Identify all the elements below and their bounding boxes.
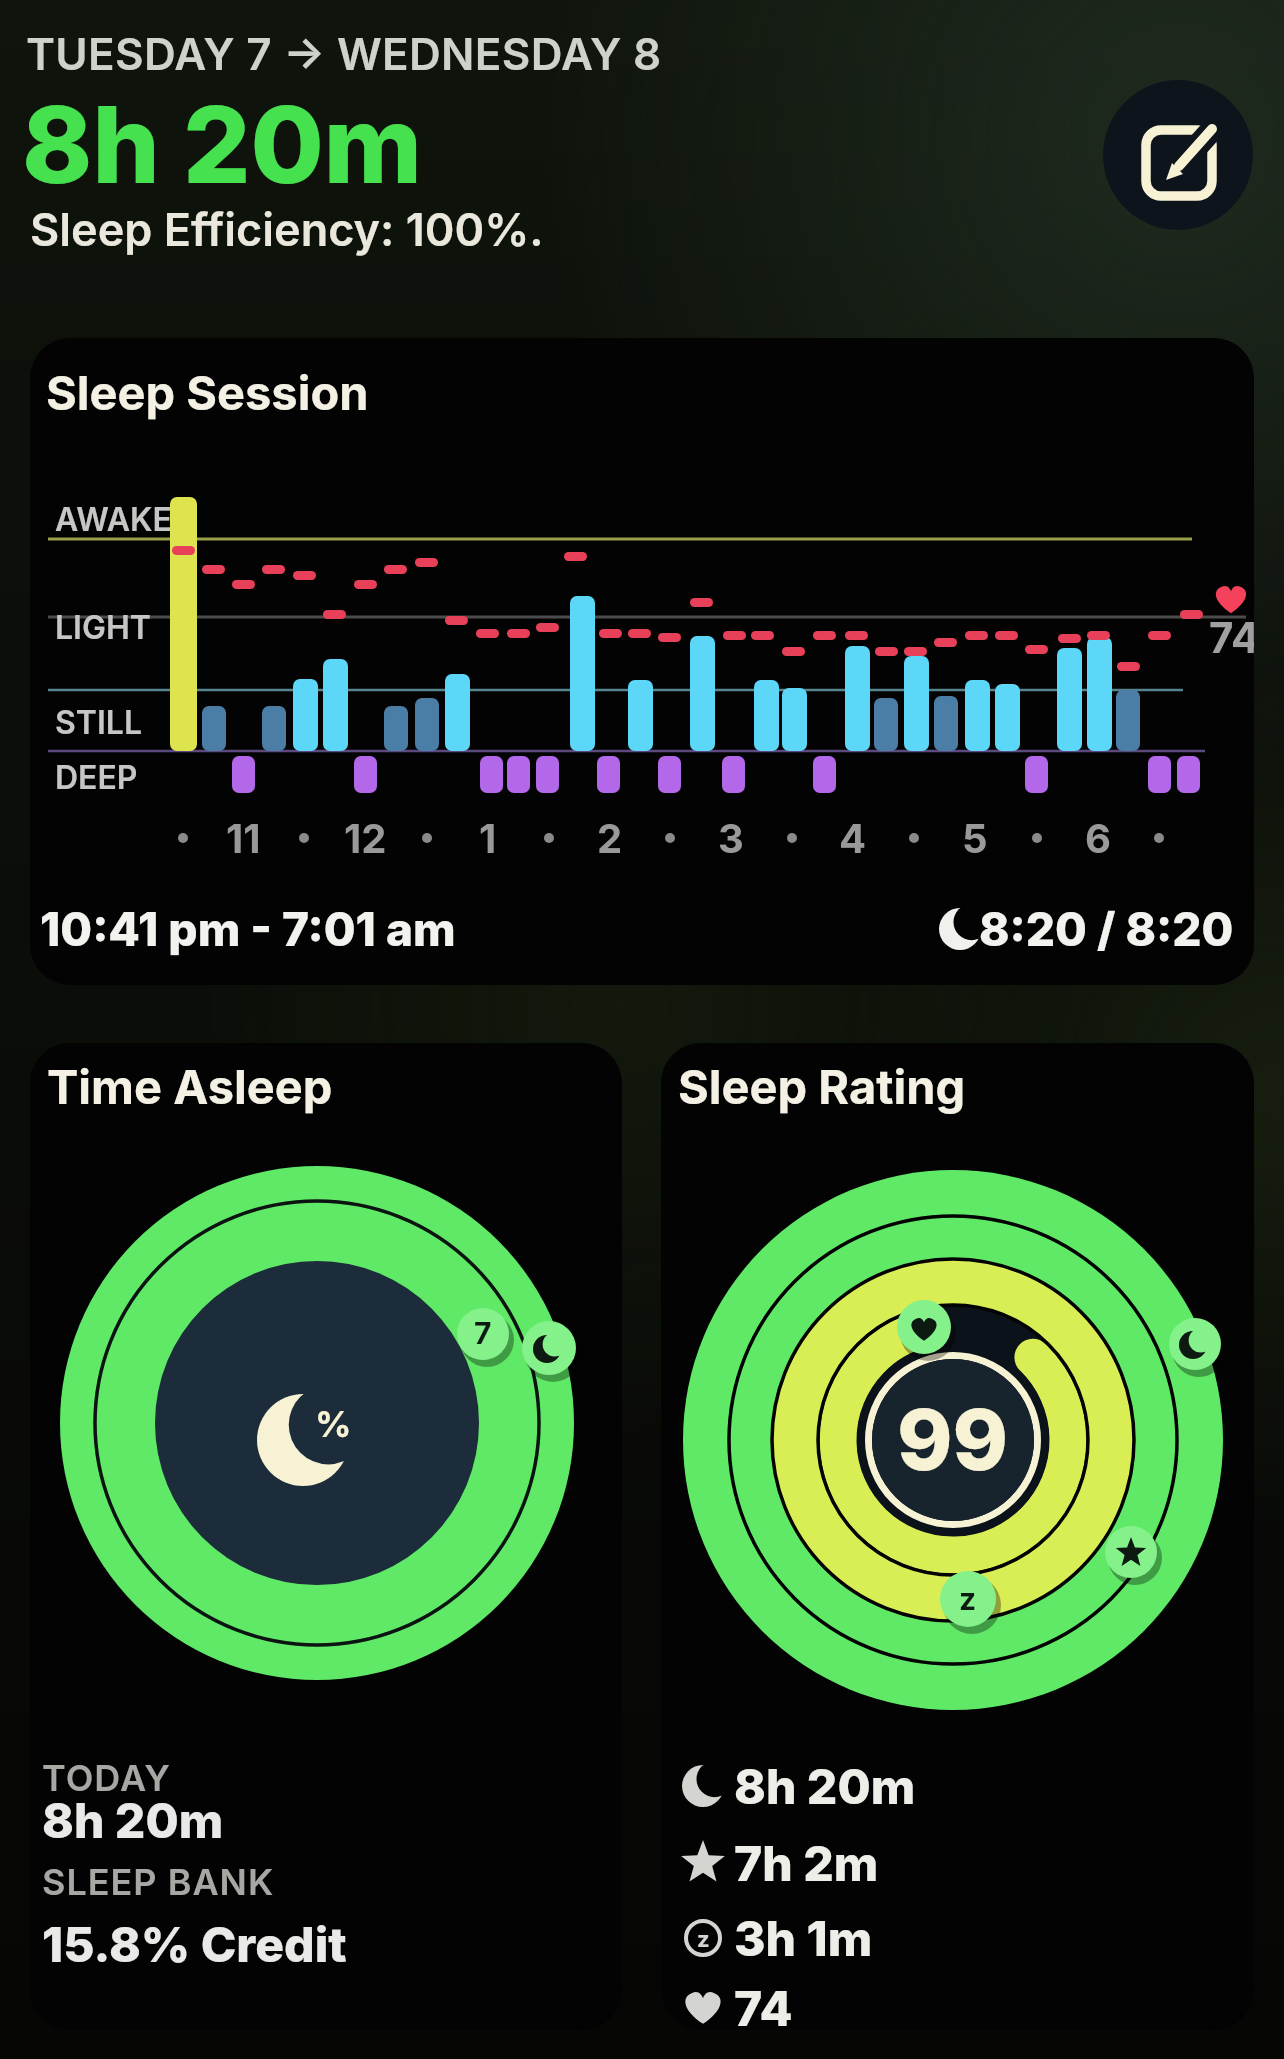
staticText: Sleep Rating [678, 1058, 966, 1115]
staticText: AWAKE [55, 500, 172, 539]
staticText: 2 [597, 814, 623, 862]
staticText: 6 [1085, 814, 1111, 862]
staticText: 3h 1m [734, 1909, 873, 1967]
staticText: Sleep Efficiency: 100%. [30, 202, 544, 256]
button[interactable]: Sleep Session [30, 338, 1254, 985]
staticText: 12 [344, 814, 387, 862]
staticText: STILL [55, 703, 142, 742]
staticText: Time Asleep [47, 1058, 333, 1115]
staticText: % [315, 1402, 352, 1446]
staticText: 7h 2m [734, 1834, 879, 1892]
staticText: 5 [962, 814, 988, 862]
staticText: TODAY [42, 1756, 171, 1800]
staticText: z [697, 1926, 710, 1953]
button[interactable]: Time Asleep [30, 1043, 622, 2030]
staticText: 4 [839, 814, 867, 862]
staticText: 1 [479, 814, 497, 862]
button[interactable]: Sleep Rating [661, 1043, 1254, 2030]
staticText: z [959, 1581, 977, 1617]
staticText: 99 [897, 1389, 1009, 1491]
staticText: LIGHT [55, 608, 151, 647]
staticText: 74 [734, 1979, 793, 2030]
staticText: DEEP [55, 758, 138, 797]
staticText: 3 [718, 814, 744, 862]
staticText: 8h 20m [734, 1757, 916, 1815]
staticText: 15.8% Credit [42, 1915, 347, 1973]
staticText: SLEEP BANK [42, 1860, 275, 1904]
button[interactable] [1103, 80, 1253, 230]
staticText: 10:41 pm - 7:01 am [40, 901, 456, 957]
staticText: Sleep Session [46, 364, 369, 421]
staticText: 11 [226, 814, 261, 862]
staticText: 7 [474, 1315, 492, 1351]
staticText: 74 [1209, 612, 1254, 663]
staticText: 8h 20m [42, 1791, 224, 1849]
staticText: TUESDAY 7 → WEDNESDAY 8 [26, 27, 662, 80]
staticText: 8:20 / 8:20 [979, 901, 1234, 957]
staticText: 8h 20m [22, 80, 423, 200]
